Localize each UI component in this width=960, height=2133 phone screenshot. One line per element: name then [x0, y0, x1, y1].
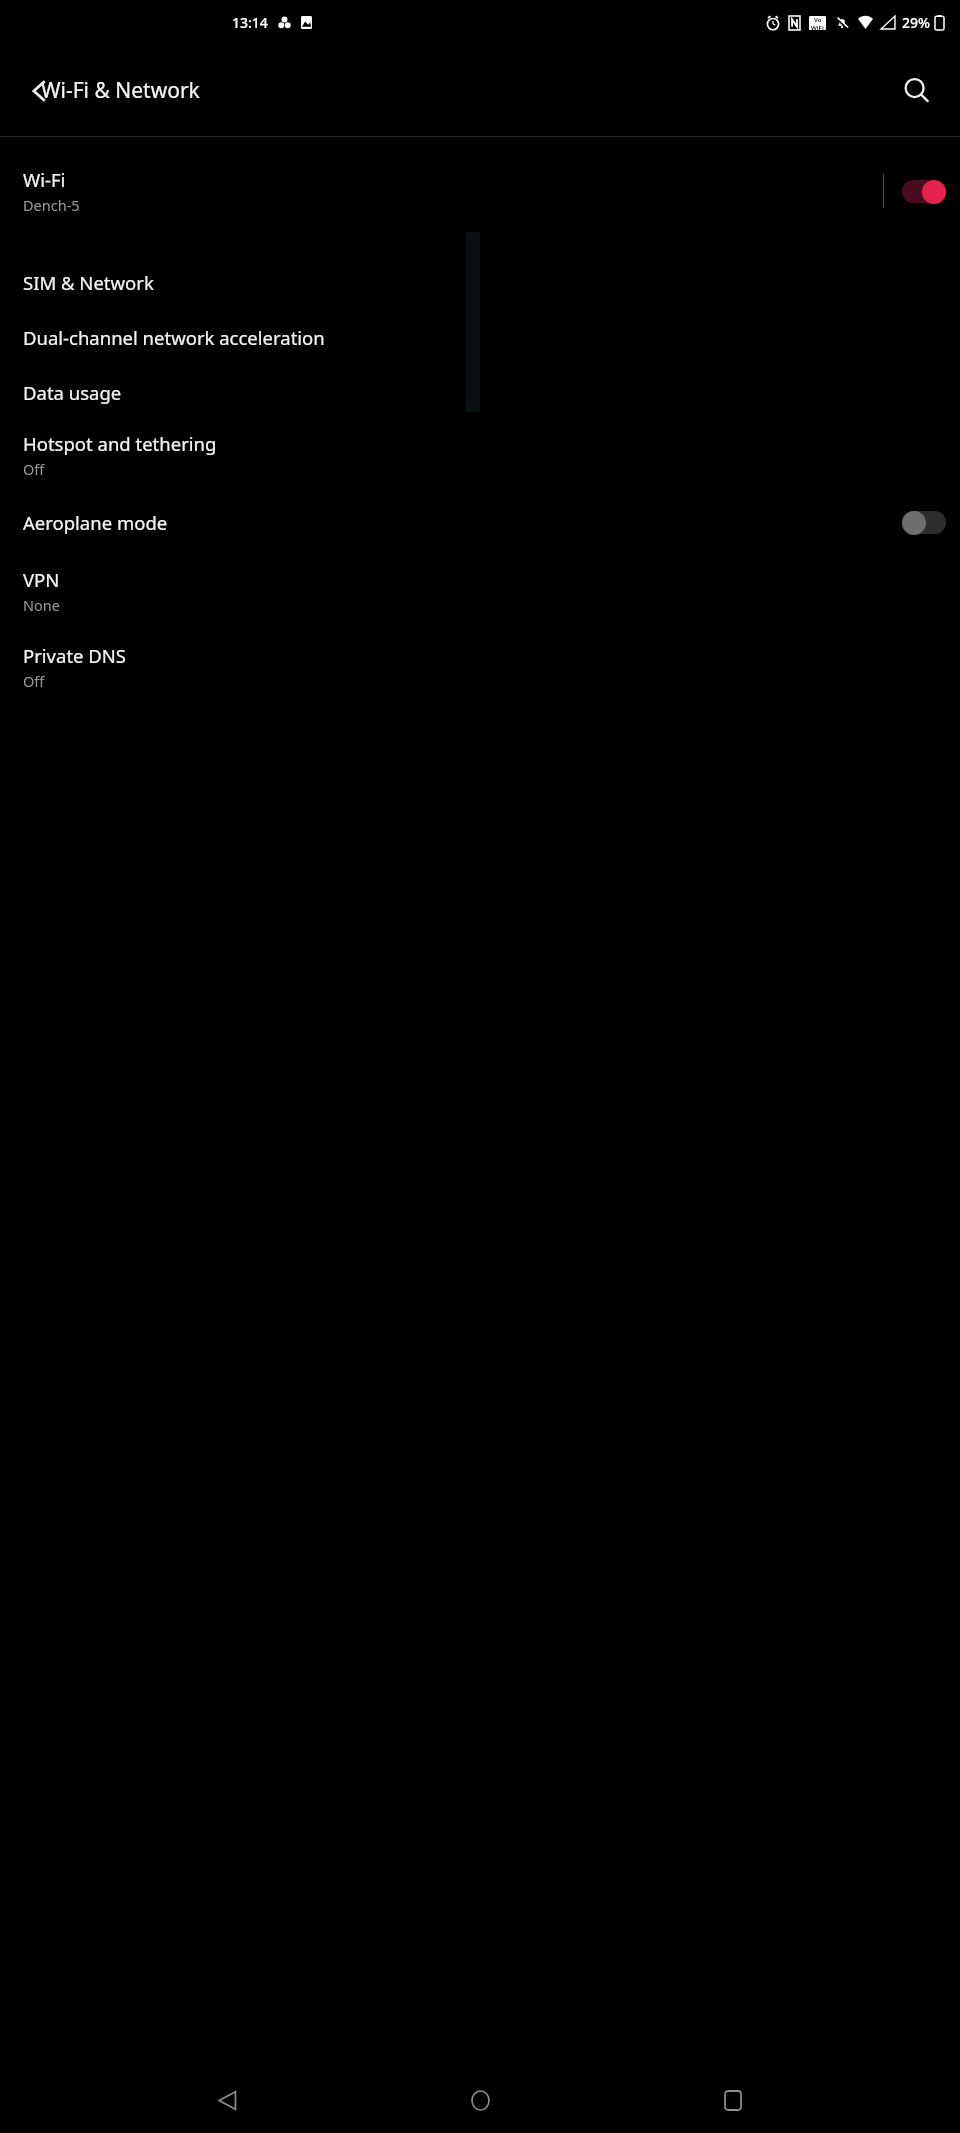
staticText: Hotspot and tethering — [23, 431, 217, 456]
button[interactable]: Home — [454, 2074, 506, 2126]
button[interactable]: Back — [201, 2074, 253, 2126]
staticText: VPN — [23, 567, 60, 592]
staticText: Data usage — [23, 380, 122, 405]
button[interactable]: Aeroplane mode — [0, 500, 960, 544]
button[interactable]: Private DNS — [0, 636, 960, 698]
staticText: Off — [23, 671, 45, 691]
staticText: 29% — [902, 13, 930, 32]
staticText: None — [23, 595, 60, 615]
button[interactable]: Back — [10, 62, 68, 120]
button[interactable]: Recent apps — [707, 2074, 759, 2126]
staticText: Off — [23, 459, 45, 479]
button[interactable]: Search — [888, 62, 946, 120]
button[interactable]: Dual-channel network acceleration — [0, 315, 960, 359]
staticText: Dual-channel network acceleration — [23, 325, 325, 350]
button[interactable]: Aeroplane mode off — [902, 510, 946, 535]
button[interactable]: SIM & Network — [0, 260, 960, 304]
staticText: Aeroplane mode — [23, 510, 168, 535]
staticText: Wi-Fi & Network — [41, 76, 200, 105]
staticText: 13:14 — [232, 13, 268, 32]
staticText: Dench-5 — [23, 195, 80, 215]
staticText: SIM & Network — [23, 270, 154, 295]
button[interactable]: Wi-Fi on — [902, 179, 946, 204]
button[interactable]: VPN — [0, 560, 960, 622]
button[interactable]: Data usage — [0, 370, 960, 414]
staticText: Private DNS — [23, 643, 127, 668]
staticText: Wi-Fi — [23, 167, 66, 192]
staticText: Vo — [814, 16, 822, 24]
button[interactable]: Hotspot and tethering — [0, 424, 960, 486]
button[interactable]: Wi-Fi — [0, 160, 960, 222]
staticText: WiFi — [811, 24, 824, 30]
